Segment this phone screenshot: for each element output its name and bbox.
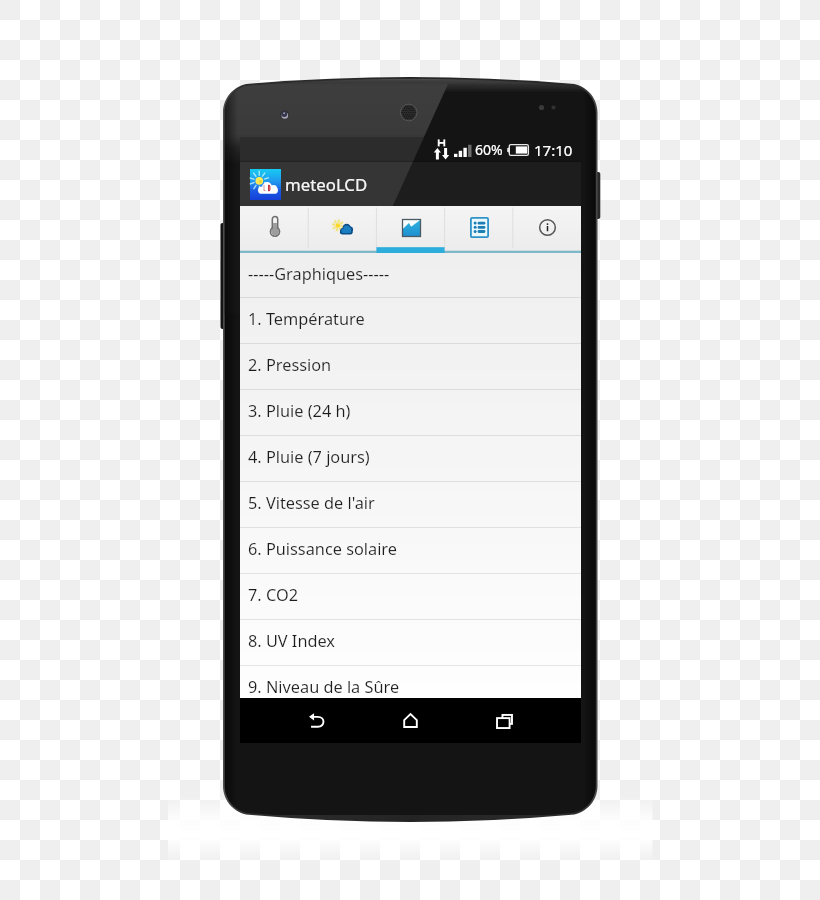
button[interactable]: Back xyxy=(286,698,346,743)
staticText: 6. Puissance solaire xyxy=(248,538,397,560)
button[interactable]: 7. CO2 xyxy=(240,574,581,620)
button[interactable]: 5. Vitesse de l'air xyxy=(240,482,581,528)
button[interactable]: 6. Puissance solaire xyxy=(240,528,581,574)
staticText: 7. CO2 xyxy=(248,584,298,606)
staticText: 2. Pression xyxy=(248,354,332,376)
button[interactable]: 8. UV Index xyxy=(240,620,581,666)
staticText: -----Graphiques----- xyxy=(248,263,390,285)
button[interactable]: Home xyxy=(380,698,440,743)
staticText: 17:10 xyxy=(534,140,573,160)
staticText: 3. Pluie (24 h) xyxy=(248,400,351,422)
button[interactable]: 4. Pluie (7 jours) xyxy=(240,436,581,482)
button[interactable]: Météo xyxy=(309,206,377,253)
staticText: meteoLCD xyxy=(285,173,368,196)
button[interactable]: Graphiques xyxy=(377,206,445,253)
button[interactable]: 3. Pluie (24 h) xyxy=(240,390,581,436)
button[interactable]: Recent apps xyxy=(474,698,534,743)
staticText: 8. UV Index xyxy=(248,630,335,652)
button[interactable]: Infos xyxy=(513,206,581,253)
staticText: 9. Niveau de la Sûre xyxy=(248,676,400,698)
button[interactable]: Température xyxy=(240,206,309,253)
button[interactable]: -----Graphiques----- xyxy=(240,253,581,298)
staticText: 5. Vitesse de l'air xyxy=(248,492,375,514)
staticText: 60% xyxy=(475,140,503,159)
button[interactable]: 1. Température xyxy=(240,298,581,344)
staticText: 4. Pluie (7 jours) xyxy=(248,446,370,468)
staticText: 1. Température xyxy=(248,308,365,330)
button[interactable]: 2. Pression xyxy=(240,344,581,390)
button[interactable]: Liste xyxy=(445,206,513,253)
button[interactable]: 9. Niveau de la Sûre xyxy=(240,666,581,698)
